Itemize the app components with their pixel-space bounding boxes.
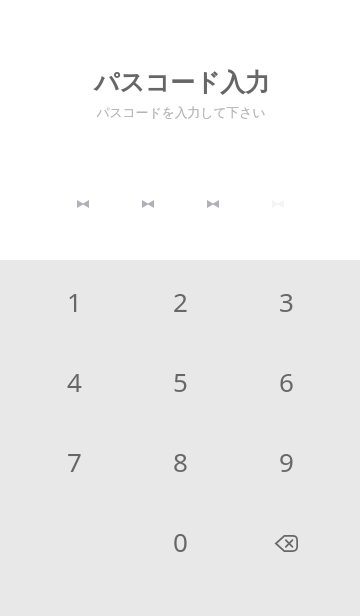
- staticText: パスコードを入力して下さい: [96, 105, 266, 121]
- staticText: 9: [279, 444, 294, 479]
- button[interactable]: 6: [233, 341, 339, 421]
- staticText: 5: [173, 364, 188, 399]
- staticText: 0: [173, 524, 188, 559]
- staticText: 2: [173, 284, 188, 319]
- button[interactable]: 9: [233, 421, 339, 501]
- button[interactable]: 0: [127, 501, 233, 581]
- staticText: 7: [67, 444, 82, 479]
- staticText: 1: [67, 284, 82, 319]
- staticText: 6: [279, 364, 294, 399]
- button[interactable]: 1: [21, 261, 127, 341]
- button[interactable]: 2: [127, 261, 233, 341]
- staticText: パスコード入力: [94, 67, 270, 98]
- button[interactable]: 8: [127, 421, 233, 501]
- button[interactable]: 4: [21, 341, 127, 421]
- button[interactable]: Delete: [233, 501, 339, 581]
- staticText: 8: [173, 444, 188, 479]
- staticText: 3: [279, 284, 294, 319]
- button[interactable]: 7: [21, 421, 127, 501]
- button[interactable]: 3: [233, 261, 339, 341]
- button[interactable]: 5: [127, 341, 233, 421]
- staticText: 4: [67, 364, 82, 399]
